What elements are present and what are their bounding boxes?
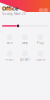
staticText: Office <box>2 5 18 12</box>
staticText: Tuesday, March 26 <box>2 12 26 16</box>
button[interactable]: Wi-Fi <box>2 34 17 45</box>
button[interactable]: Heater <box>2 51 17 61</box>
button[interactable]: Plug <box>33 34 48 45</box>
staticText: Speaker <box>20 58 30 61</box>
button[interactable]: Notifications <box>39 8 43 13</box>
button[interactable]: Camera <box>33 51 48 61</box>
staticText: Wi-Fi <box>7 41 13 45</box>
staticText: Lamp <box>22 41 28 45</box>
button[interactable]: Speaker <box>17 51 33 61</box>
staticText: Plug <box>37 41 44 45</box>
button[interactable]: Lamp <box>17 34 33 45</box>
button[interactable]: Profile <box>43 8 48 13</box>
staticText: Heater <box>5 58 14 61</box>
staticText: Camera <box>36 58 45 61</box>
